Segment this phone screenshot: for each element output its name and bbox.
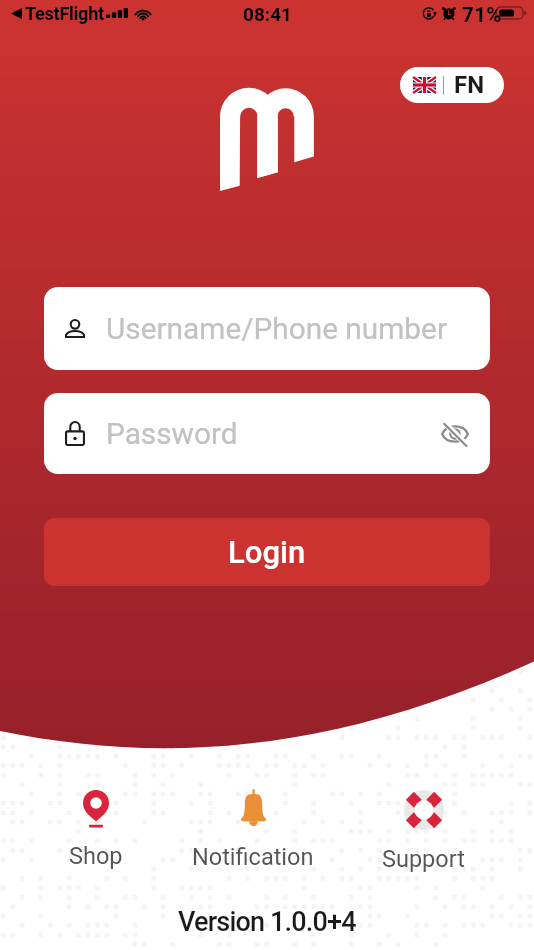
staticText: Login [228, 534, 306, 570]
staticText: Password [106, 416, 238, 451]
button[interactable]: Notification [192, 790, 314, 871]
staticText: Shop [69, 842, 123, 870]
staticText: Version 1.0.0+4 [178, 906, 356, 938]
staticText: 71% [462, 3, 502, 27]
button[interactable]: FN [400, 67, 504, 103]
button[interactable]: Shop [69, 790, 123, 870]
staticText: 08:41 [243, 3, 292, 25]
staticText: Notification [192, 843, 314, 871]
button[interactable]: Password [44, 393, 490, 474]
button[interactable]: Username/Phone number [44, 287, 490, 370]
staticText: TestFlight [25, 3, 104, 24]
staticText: Support [382, 845, 465, 873]
staticText: FN [454, 71, 485, 99]
staticText: Username/Phone number [106, 311, 447, 346]
button[interactable]: Support [382, 790, 465, 873]
button[interactable]: Show password [440, 419, 470, 449]
button[interactable]: Login [44, 518, 490, 586]
